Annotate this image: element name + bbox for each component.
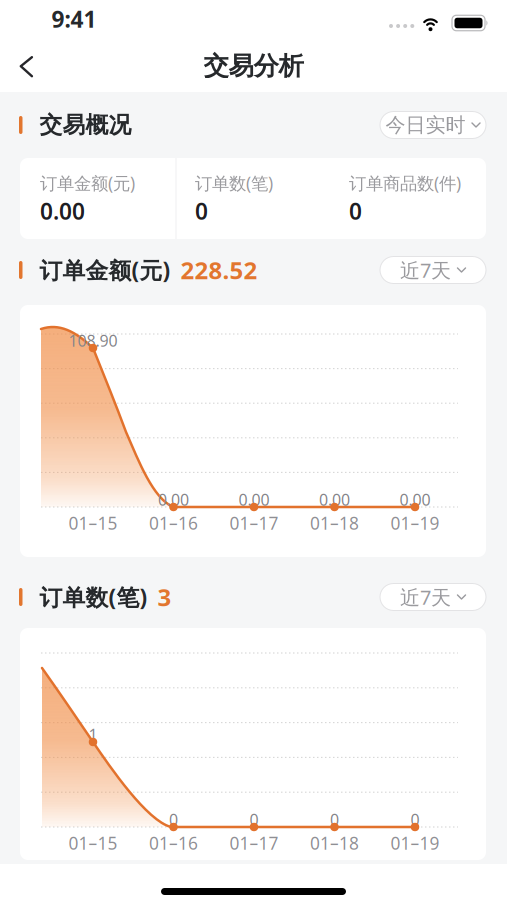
staticText: 228.52 [180, 254, 257, 286]
staticText: 0 [169, 809, 178, 830]
staticText: 0.00 [40, 196, 85, 226]
staticText: 01–17 [229, 511, 278, 534]
staticText: 0 [330, 809, 339, 830]
staticText: 订单数(笔) [195, 171, 273, 194]
staticText: 交易分析 [203, 50, 303, 81]
staticText: 订单金额(元) [39, 255, 170, 285]
staticText: 今日实时 [385, 113, 465, 137]
staticText: 交易概况 [39, 111, 131, 139]
staticText: 0.00 [319, 489, 350, 510]
staticText: 0 [410, 809, 419, 830]
staticText: 01–18 [310, 511, 359, 534]
staticText: 近7天 [400, 257, 451, 283]
staticText: 0.00 [399, 489, 430, 510]
staticText: 订单数(笔) [39, 582, 147, 612]
staticText: 01–19 [390, 831, 439, 854]
staticText: 108.90 [68, 330, 117, 351]
staticText: 1 [88, 724, 97, 745]
staticText: 3 [157, 581, 171, 613]
staticText: 0.00 [238, 489, 269, 510]
staticText: 近7天 [400, 584, 451, 610]
button[interactable]: 近7天 [380, 583, 486, 610]
staticText: 01–16 [149, 831, 198, 854]
button[interactable]: 近7天 [380, 256, 486, 283]
staticText: 订单商品数(件) [349, 171, 461, 194]
staticText: 订单金额(元) [40, 171, 135, 194]
staticText: 01–18 [310, 831, 359, 854]
staticText: 0.00 [158, 489, 189, 510]
staticText: 01–19 [390, 511, 439, 534]
staticText: 01–15 [68, 511, 117, 534]
button[interactable]: 今日实时 [380, 111, 486, 138]
staticText: 01–17 [229, 831, 278, 854]
staticText: 0 [249, 809, 258, 830]
staticText: 01–15 [68, 831, 117, 854]
button[interactable]: Back [8, 51, 44, 81]
staticText: 01–16 [149, 511, 198, 534]
staticText: 9:41 [51, 4, 96, 34]
staticText: 0 [349, 196, 362, 226]
staticText: 0 [195, 196, 208, 226]
